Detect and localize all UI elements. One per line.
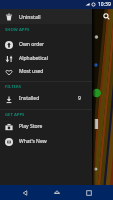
staticText: What's New [19, 138, 47, 145]
button[interactable]: Installed [0, 91, 92, 105]
button[interactable]: Recents [81, 185, 96, 200]
staticText: Installed [19, 95, 40, 102]
button[interactable]: Alphabetical [0, 51, 92, 65]
staticText: 10:39 [98, 1, 111, 8]
staticText: FILTERS [5, 84, 22, 90]
staticText: Alphabetical [19, 55, 48, 62]
staticText: Uninstall [19, 13, 41, 20]
button[interactable]: Search [99, 9, 113, 23]
button[interactable]: Own order [0, 37, 92, 51]
button[interactable]: Play Store [0, 119, 92, 133]
staticText: Most used [19, 68, 44, 75]
button[interactable]: Uninstall [0, 9, 92, 24]
staticText: SHOW APPS [5, 27, 30, 33]
staticText: Own order [19, 41, 45, 48]
staticText: GET APPS [5, 112, 25, 118]
button[interactable]: Back [17, 185, 32, 200]
button[interactable]: What's New [0, 134, 92, 148]
button[interactable]: Most used [0, 64, 92, 78]
staticText: 9 [78, 95, 81, 102]
staticText: Play Store [19, 123, 43, 130]
button[interactable]: Home [49, 185, 64, 200]
